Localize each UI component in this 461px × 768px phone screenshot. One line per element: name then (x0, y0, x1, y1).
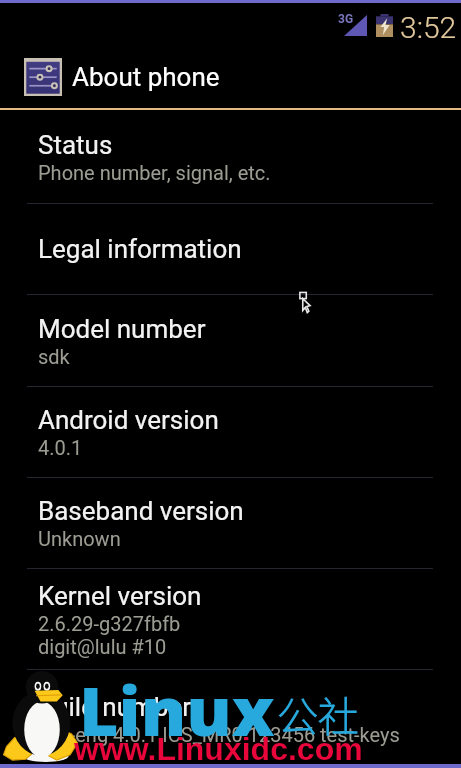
staticText: digit@lulu #10 (38, 635, 167, 658)
button[interactable]: Kernel version (0, 569, 461, 669)
staticText: 公社 (277, 684, 359, 743)
staticText: Baseband version (38, 496, 244, 526)
staticText: 4.0.1 (38, 436, 83, 459)
staticText: Kernel version (38, 581, 202, 611)
staticText: About phone (72, 62, 220, 92)
button[interactable]: Baseband version (0, 478, 461, 568)
staticText: Build number (38, 692, 191, 722)
staticText: Model number (38, 314, 206, 344)
staticText: Phone number, signal, etc. (38, 161, 271, 184)
button[interactable]: Status (0, 110, 461, 203)
button[interactable]: Android version (0, 387, 461, 477)
staticText: sdk-eng 4.0.1 ICS_MR0 123456 test-keys (38, 723, 400, 746)
staticText: Android version (38, 405, 219, 435)
button[interactable]: Legal information (0, 204, 461, 294)
button[interactable]: Model number (0, 295, 461, 386)
staticText: www.Linuxidc.com (74, 731, 363, 767)
staticText: 2.6.29-g327fbfb (38, 612, 181, 635)
staticText: Legal information (38, 234, 242, 264)
staticText: 3:52 (400, 10, 457, 45)
staticText: Linux (79, 663, 275, 756)
staticText: 3G (338, 12, 354, 26)
staticText: Unknown (38, 527, 121, 550)
staticText: Status (38, 130, 113, 160)
staticText: sdk (38, 345, 70, 368)
button[interactable]: Build number (0, 670, 461, 768)
button[interactable]: About phone (0, 46, 461, 108)
